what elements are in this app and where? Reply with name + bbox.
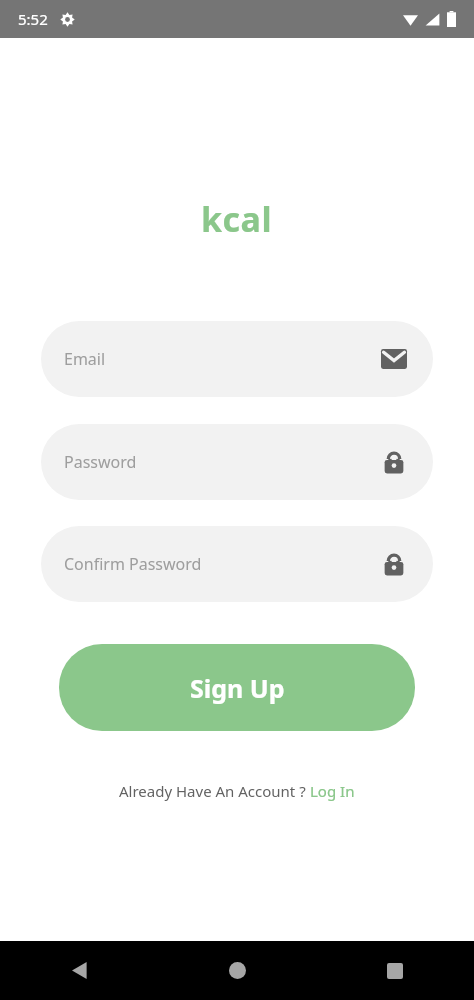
button[interactable]: Log In bbox=[310, 781, 355, 801]
button[interactable]: Home bbox=[158, 941, 316, 1000]
other: Password bbox=[381, 551, 407, 577]
staticText: 5:52 bbox=[18, 9, 48, 29]
button[interactable]: Back bbox=[0, 941, 158, 1000]
staticText: Log In bbox=[310, 781, 355, 801]
button[interactable]: Recent apps bbox=[316, 941, 474, 1000]
staticText: Email bbox=[64, 348, 106, 370]
other: Password bbox=[381, 449, 407, 475]
staticText: kcal bbox=[201, 196, 273, 242]
staticText: Confirm Password bbox=[64, 553, 202, 575]
button[interactable]: Sign Up bbox=[59, 644, 415, 731]
button[interactable]: Password bbox=[41, 424, 433, 500]
other: Email bbox=[381, 346, 407, 372]
staticText: Password bbox=[64, 451, 137, 473]
staticText: Sign Up bbox=[190, 671, 285, 705]
button[interactable]: Email bbox=[41, 321, 433, 397]
staticText: Already Have An Account ? bbox=[119, 781, 310, 801]
button[interactable]: Confirm Password bbox=[41, 526, 433, 602]
